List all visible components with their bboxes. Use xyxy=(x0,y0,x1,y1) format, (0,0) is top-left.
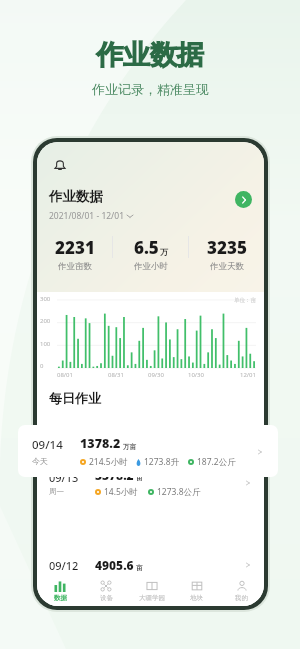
staticText: 作业数据 xyxy=(96,38,204,72)
button[interactable]: 数据 xyxy=(37,576,83,606)
staticText: 300 xyxy=(40,295,51,303)
staticText: 09/13 xyxy=(49,470,79,485)
button[interactable]: Notifications xyxy=(49,154,71,176)
staticText: 3378.2 xyxy=(95,467,134,483)
staticText: 187.2公斤 xyxy=(197,456,236,468)
staticText: 4905.6 xyxy=(95,557,134,573)
staticText: 09/14 xyxy=(32,437,63,453)
staticText: 单位：亩 xyxy=(234,297,256,304)
staticText: 2231 xyxy=(55,236,95,259)
staticText: 设备 xyxy=(100,594,113,602)
staticText: 作业记录，精准呈现 xyxy=(92,81,209,97)
button[interactable]: 大疆学园 xyxy=(129,576,174,606)
staticText: 今天 xyxy=(32,456,48,466)
staticText: 万 xyxy=(160,247,168,257)
staticText: 12/01 xyxy=(240,371,256,379)
button[interactable]: 3235 xyxy=(189,236,264,272)
button[interactable]: 2021/08/01 - 12/01 xyxy=(49,210,133,222)
staticText: 数据 xyxy=(54,594,67,602)
other: Open detail xyxy=(256,448,264,456)
button[interactable]: 设备 xyxy=(83,576,129,606)
staticText: 万亩 xyxy=(123,443,136,451)
staticText: 1378.2 xyxy=(80,435,121,452)
staticText: 2021/08/01 - 12/01 xyxy=(49,210,124,222)
staticText: 3235 xyxy=(207,236,247,259)
other: Open detail xyxy=(244,561,252,569)
staticText: 100 xyxy=(40,340,51,348)
staticText: 214.5小时 xyxy=(89,456,128,468)
button[interactable]: 2231 xyxy=(37,236,112,272)
button[interactable]: 6.5 xyxy=(113,236,188,272)
staticText: 每日作业 xyxy=(49,390,101,406)
staticText: 09/30 xyxy=(148,371,164,379)
staticText: 08/31 xyxy=(108,371,124,379)
staticText: 亩 xyxy=(136,564,143,572)
staticText: 地块 xyxy=(190,594,203,602)
button[interactable]: 我的 xyxy=(219,576,264,606)
staticText: 14.5小时 xyxy=(104,486,138,498)
staticText: 10/30 xyxy=(188,371,204,379)
staticText: 大疆学园 xyxy=(139,594,165,602)
staticText: 6.5 xyxy=(134,236,159,259)
staticText: 周一 xyxy=(49,487,64,496)
staticText: 1273.8公斤 xyxy=(157,486,201,498)
staticText: 作业小时 xyxy=(134,261,168,272)
button[interactable]: 地块 xyxy=(174,576,219,606)
staticText: 作业亩数 xyxy=(58,261,92,272)
staticText: 09/12 xyxy=(49,558,85,573)
staticText: 亩 xyxy=(136,474,143,482)
staticText: 08/01 xyxy=(57,371,73,379)
staticText: 200 xyxy=(40,317,51,325)
button[interactable]: 09/13 xyxy=(37,462,264,503)
staticText: 作业天数 xyxy=(210,261,244,272)
staticText: 1273.8升 xyxy=(144,456,180,468)
other: Open detail xyxy=(244,479,252,487)
button[interactable]: Next xyxy=(235,191,252,208)
staticText: 作业数据 xyxy=(49,188,103,205)
button[interactable]: 09/14 xyxy=(18,425,278,477)
staticText: 我的 xyxy=(235,594,248,602)
staticText: 0 xyxy=(40,362,44,370)
button[interactable]: 09/12 xyxy=(37,557,264,573)
